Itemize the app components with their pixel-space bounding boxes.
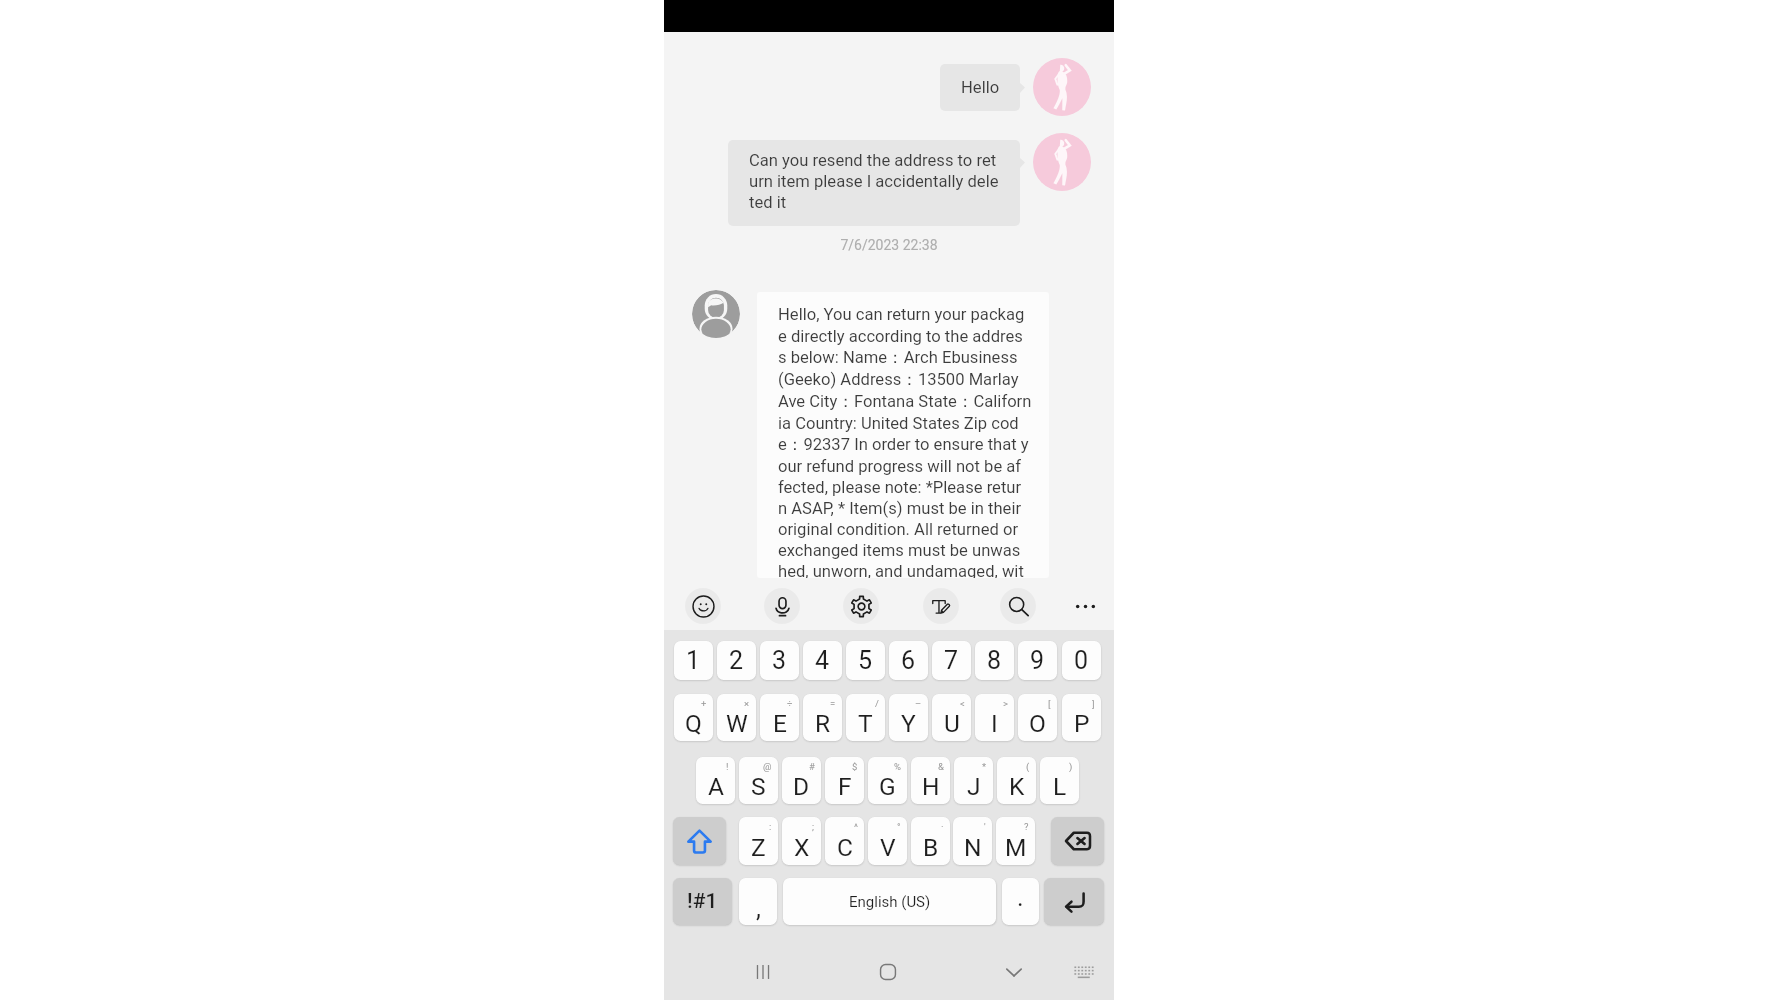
button[interactable]: 8 (975, 641, 1014, 680)
button[interactable]: & (911, 757, 950, 804)
button[interactable]: . (1002, 878, 1039, 925)
staticText: 4 (815, 646, 830, 675)
button[interactable]: Settings (843, 588, 879, 624)
button[interactable]: Text style (923, 588, 959, 624)
button[interactable]: ^ (825, 817, 864, 865)
staticText: !#1 (687, 889, 718, 914)
button[interactable]: ? (996, 817, 1035, 865)
button[interactable]: Contact avatar (1033, 133, 1091, 191)
staticText: / (875, 698, 879, 709)
button[interactable]: Sender avatar (692, 290, 740, 338)
button[interactable]: 6 (889, 641, 928, 680)
staticText: S (751, 772, 766, 801)
button[interactable]: 4 (803, 641, 842, 680)
button[interactable]: ; (782, 817, 821, 865)
staticText: [ (1048, 698, 1051, 709)
staticText: % (894, 761, 901, 772)
button[interactable]: = (803, 694, 842, 741)
button[interactable]: / (846, 694, 885, 741)
staticText: + (701, 698, 707, 709)
button[interactable]: % (868, 757, 907, 804)
button[interactable]: 0 (1062, 641, 1101, 680)
staticText: F (838, 772, 852, 801)
button[interactable]: Enter (1044, 878, 1104, 925)
staticText: & (938, 761, 944, 772)
staticText: · (941, 821, 944, 832)
button[interactable]: Shift (673, 817, 726, 865)
staticText: I (991, 709, 998, 738)
staticText: ÷ (787, 698, 793, 709)
button[interactable]: Home (866, 950, 910, 994)
button[interactable]: 1 (674, 641, 713, 680)
staticText: ' (984, 821, 986, 832)
staticText: = (830, 698, 836, 709)
button[interactable]: ( (997, 757, 1036, 804)
staticText: , (756, 894, 761, 923)
button[interactable]: × (717, 694, 756, 741)
staticText: 2 (729, 646, 744, 675)
button[interactable]: Change keyboard (1062, 950, 1106, 994)
staticText: ; (812, 821, 815, 832)
staticText: J (967, 772, 981, 801)
button[interactable]: Hello (940, 64, 1020, 111)
staticText: Q (685, 709, 702, 738)
button[interactable]: Emoji (685, 588, 721, 624)
button[interactable]: More options (1067, 588, 1103, 624)
staticText: English (US) (849, 893, 931, 911)
button[interactable]: 5 (846, 641, 885, 680)
staticText: ! (726, 761, 729, 772)
staticText: : (769, 821, 772, 832)
button[interactable]: · (911, 817, 950, 865)
button[interactable]: ° (868, 817, 907, 865)
staticText: Hello (961, 78, 1000, 97)
button[interactable]: $ (825, 757, 864, 804)
button[interactable]: Backspace (1051, 817, 1104, 865)
button[interactable]: : (739, 817, 778, 865)
button[interactable]: Contact avatar (1033, 58, 1091, 116)
staticText: 8 (987, 646, 1002, 675)
button[interactable]: 9 (1018, 641, 1057, 680)
staticText: O (1029, 709, 1046, 738)
staticText: . (1017, 883, 1024, 912)
button[interactable]: ) (1040, 757, 1079, 804)
staticText: U (944, 709, 960, 738)
button[interactable]: Voice input (764, 588, 800, 624)
button[interactable]: * (954, 757, 993, 804)
staticText: > (1003, 698, 1008, 709)
staticText: B (923, 833, 939, 862)
button[interactable]: English (US) (783, 878, 996, 925)
button[interactable]: + (674, 694, 713, 741)
button[interactable]: Recent apps (741, 950, 785, 994)
staticText: 5 (858, 646, 873, 675)
button[interactable]: – (889, 694, 928, 741)
staticText: ( (1026, 761, 1030, 772)
button[interactable]: Search (1000, 588, 1036, 624)
staticText: E (773, 709, 787, 738)
staticText: 7/6/2023 22:38 (664, 237, 1114, 253)
button[interactable]: # (782, 757, 821, 804)
button[interactable]: Hello, You can return your packag e dire… (757, 292, 1049, 578)
staticText: ° (897, 821, 901, 832)
staticText: × (744, 698, 750, 709)
button[interactable]: 7 (932, 641, 971, 680)
button[interactable]: ÷ (760, 694, 799, 741)
button[interactable]: Can you resend the address to ret urn it… (728, 140, 1020, 226)
button[interactable]: , (739, 878, 777, 925)
staticText: 1 (686, 646, 701, 675)
button[interactable]: Symbols (673, 878, 732, 925)
button[interactable]: > (975, 694, 1014, 741)
button[interactable]: ] (1062, 694, 1101, 741)
button[interactable]: Hide keyboard (992, 950, 1036, 994)
button[interactable]: < (932, 694, 971, 741)
button[interactable]: ! (696, 757, 735, 804)
button[interactable]: @ (739, 757, 778, 804)
button[interactable]: 2 (717, 641, 756, 680)
button[interactable]: 3 (760, 641, 799, 680)
staticText: W (726, 709, 748, 738)
staticText: 6 (901, 646, 916, 675)
staticText: ) (1069, 761, 1073, 772)
staticText: ? (1024, 821, 1029, 832)
button[interactable]: [ (1018, 694, 1057, 741)
staticText: G (879, 772, 896, 801)
button[interactable]: ' (953, 817, 992, 865)
